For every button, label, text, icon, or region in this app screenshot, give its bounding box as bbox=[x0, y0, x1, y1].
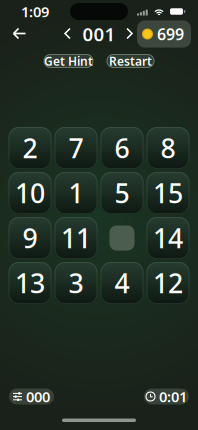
staticText: 000 bbox=[26, 387, 50, 406]
button[interactable]: 11 bbox=[54, 217, 97, 259]
button[interactable]: 699 bbox=[137, 20, 191, 48]
staticText: 4 bbox=[114, 265, 129, 301]
staticText: 12 bbox=[153, 265, 183, 301]
button[interactable]: Elapsed time bbox=[144, 388, 189, 404]
button[interactable]: 10 bbox=[8, 172, 51, 214]
button[interactable]: Restart bbox=[106, 54, 154, 68]
staticText: 5 bbox=[114, 175, 129, 211]
staticText: 14 bbox=[153, 220, 183, 256]
button[interactable]: Get Hint bbox=[43, 54, 93, 68]
button[interactable]: Moves bbox=[9, 388, 54, 404]
button[interactable]: 2 bbox=[8, 127, 51, 169]
staticText: 10 bbox=[15, 175, 45, 211]
staticText: Get Hint bbox=[44, 53, 93, 69]
button[interactable]: 1 bbox=[54, 172, 97, 214]
staticText: 6 bbox=[114, 130, 129, 166]
staticText: Restart bbox=[109, 53, 152, 69]
staticText: 13 bbox=[15, 265, 45, 301]
staticText: 9 bbox=[22, 220, 37, 256]
button[interactable]: 5 bbox=[100, 172, 143, 214]
staticText: 8 bbox=[160, 130, 175, 166]
button[interactable]: Back bbox=[6, 23, 34, 45]
button[interactable]: 3 bbox=[54, 262, 97, 304]
button[interactable]: 15 bbox=[146, 172, 189, 214]
staticText: 699 bbox=[157, 23, 184, 45]
button[interactable]: 13 bbox=[8, 262, 51, 304]
staticText: 2 bbox=[22, 130, 37, 166]
staticText: 1:09 bbox=[21, 2, 49, 21]
staticText: 0:01 bbox=[159, 387, 187, 406]
button[interactable]: 12 bbox=[146, 262, 189, 304]
button[interactable]: 4 bbox=[100, 262, 143, 304]
staticText: 7 bbox=[68, 130, 83, 166]
button[interactable]: 6 bbox=[100, 127, 143, 169]
button[interactable]: 8 bbox=[146, 127, 189, 169]
staticText: 1 bbox=[68, 175, 83, 211]
button[interactable]: 14 bbox=[146, 217, 189, 259]
button[interactable]: 7 bbox=[54, 127, 97, 169]
button[interactable]: Previous level bbox=[62, 25, 73, 43]
button[interactable]: Next level bbox=[124, 25, 135, 43]
staticText: 11 bbox=[61, 220, 91, 256]
staticText: 15 bbox=[153, 175, 183, 211]
staticText: 3 bbox=[68, 265, 83, 301]
staticText: 001 bbox=[82, 22, 115, 46]
button[interactable]: 9 bbox=[8, 217, 51, 259]
